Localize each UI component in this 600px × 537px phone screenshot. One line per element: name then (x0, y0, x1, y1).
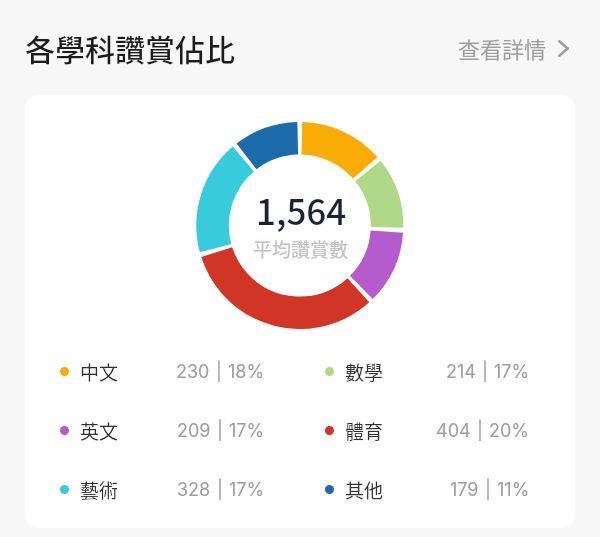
button[interactable]: 查看詳情 (444, 22, 600, 74)
staticText: 179 (450, 479, 479, 501)
staticText: 數學 (345, 358, 384, 386)
staticText: | (216, 361, 222, 383)
staticText: 平均讚賞數 (253, 235, 349, 263)
staticText: 17% (229, 420, 265, 442)
staticText: 328 (177, 479, 211, 501)
staticText: 各學科讚賞佔比 (25, 26, 235, 69)
button[interactable]: 體育 (324, 401, 575, 460)
button[interactable]: 其他 (324, 460, 575, 519)
staticText: 11% (497, 479, 530, 501)
staticText: 404 (436, 420, 471, 442)
staticText: 18% (228, 361, 265, 383)
staticText: | (217, 479, 223, 501)
button[interactable]: 英文 (25, 401, 324, 460)
staticText: 查看詳情 (458, 32, 547, 64)
staticText: 17% (229, 479, 265, 501)
button[interactable]: 藝術 (25, 460, 324, 519)
button[interactable]: 中文 (25, 342, 324, 401)
staticText: | (477, 420, 483, 442)
staticText: 230 (176, 361, 210, 383)
staticText: 214 (446, 361, 476, 383)
staticText: 英文 (80, 417, 119, 445)
staticText: 體育 (345, 417, 384, 445)
staticText: 藝術 (80, 476, 119, 504)
staticText: 20% (489, 420, 530, 442)
staticText: 209 (177, 420, 211, 442)
button[interactable]: 數學 (324, 342, 575, 401)
staticText: 1,564 (256, 184, 347, 235)
staticText: | (482, 361, 488, 383)
staticText: 其他 (345, 476, 384, 504)
staticText: 中文 (80, 358, 119, 386)
staticText: | (217, 420, 223, 442)
staticText: 17% (494, 361, 530, 383)
staticText: | (485, 479, 491, 501)
